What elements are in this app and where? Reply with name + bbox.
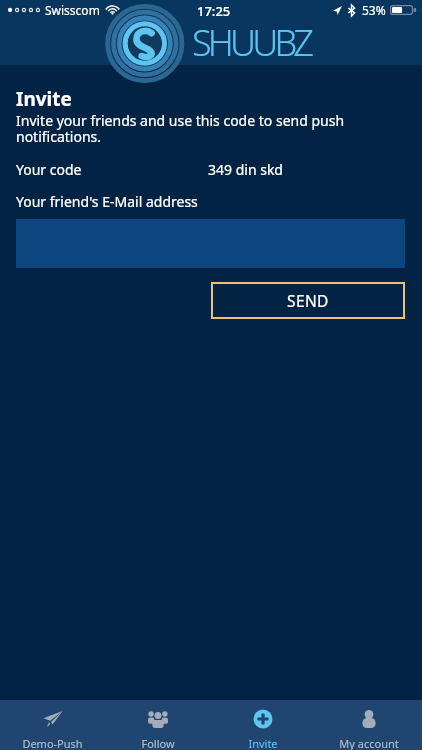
staticText: Your friend's E-Mail address bbox=[16, 192, 198, 211]
staticText: 349 din skd bbox=[208, 160, 283, 179]
staticText: Invite bbox=[16, 86, 72, 112]
staticText: Demo-Push bbox=[22, 736, 83, 750]
staticText: Swisscom bbox=[45, 2, 100, 18]
button[interactable]: Demo-Push bbox=[0, 700, 105, 750]
staticText: Invite bbox=[248, 736, 278, 750]
button[interactable]: Invite bbox=[210, 700, 316, 750]
staticText: Follow bbox=[141, 736, 175, 750]
staticText: Invite your friends and use this code to… bbox=[16, 111, 356, 146]
staticText: SEND bbox=[287, 290, 329, 311]
staticText: 53% bbox=[362, 2, 386, 18]
staticText: 17:25 bbox=[197, 2, 231, 20]
button[interactable]: SEND bbox=[211, 282, 405, 319]
staticText: SHUUBZ bbox=[192, 18, 311, 67]
button[interactable]: Follow bbox=[105, 700, 210, 750]
button[interactable]: My account bbox=[316, 700, 422, 750]
staticText: Your code bbox=[16, 160, 82, 179]
staticText: My account bbox=[339, 736, 399, 750]
